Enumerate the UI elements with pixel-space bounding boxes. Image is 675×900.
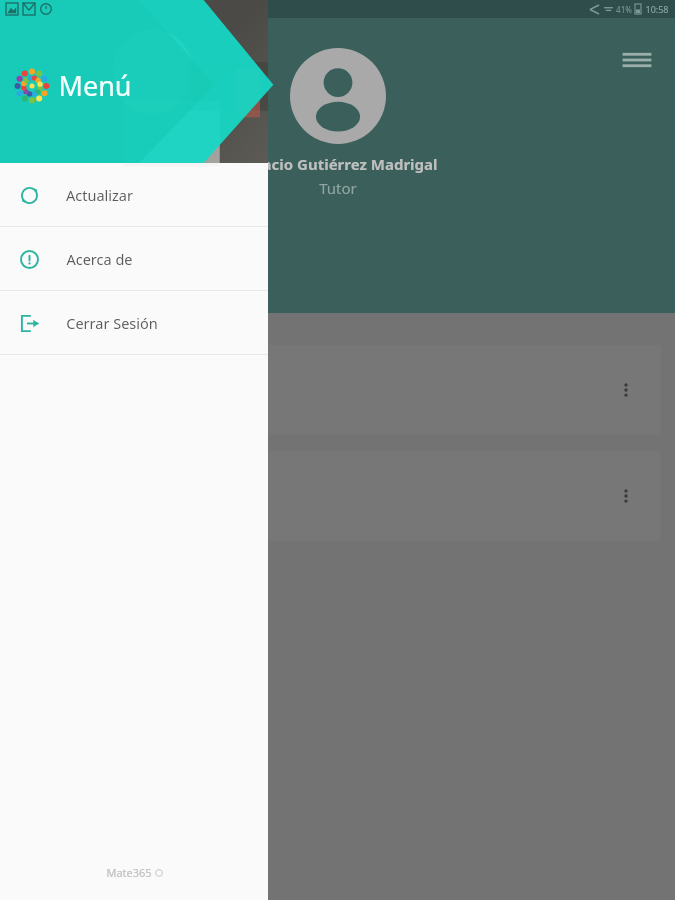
button[interactable]: Cerrar Sesión	[0, 291, 268, 354]
button[interactable]: Acerca de	[0, 227, 268, 290]
staticText: Menú	[58, 67, 132, 104]
button[interactable]: Más opciones	[14, 345, 661, 435]
button[interactable]: Más opciones	[609, 479, 643, 513]
button[interactable]: Más opciones	[609, 373, 643, 407]
staticText: 10:58	[645, 3, 669, 15]
staticText: Actualizar	[66, 185, 133, 205]
button[interactable]: Abrir menú	[617, 40, 657, 80]
staticText: 41%	[616, 4, 632, 15]
staticText: Cerrar Sesión	[66, 313, 158, 333]
button[interactable]: Actualizar	[0, 163, 268, 226]
staticText: Mate365	[106, 865, 152, 880]
staticText: Tutor	[319, 178, 357, 198]
staticText: Ignacio Gutiérrez Madrigal	[237, 154, 438, 174]
button[interactable]: Más opciones	[14, 451, 661, 541]
staticText: Acerca de	[66, 249, 133, 269]
